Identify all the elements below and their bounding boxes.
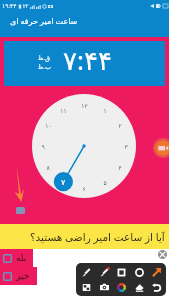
staticText: ۲۲ (23, 3, 29, 9)
button[interactable]: Arrow (148, 265, 164, 279)
staticText: ۸ (46, 164, 50, 171)
button[interactable]: Undo (148, 280, 164, 294)
staticText: ۲ (118, 122, 122, 129)
staticText: ۷ (61, 178, 66, 187)
staticText: ۱۹:۴۴ (2, 2, 17, 10)
staticText: ۳ (124, 143, 128, 150)
button[interactable]: Video call (153, 138, 169, 158)
button[interactable]: Colour (113, 280, 129, 294)
button[interactable]: Square (113, 265, 129, 279)
button[interactable]: Highlighter (96, 265, 112, 279)
button[interactable]: Eraser (131, 280, 147, 294)
staticText: ۱۱ (60, 107, 67, 114)
staticText: ۱ (103, 107, 107, 114)
staticText: ب.ظ (38, 63, 51, 71)
staticText: ۱۲ (81, 102, 88, 109)
staticText: آیا از ساعت امیر راضی هستید؟ (30, 230, 165, 244)
staticText: ۹ (41, 143, 45, 150)
button[interactable]: بله (0, 249, 33, 267)
button[interactable]: Pen (78, 265, 94, 279)
button[interactable]: Mosaic (78, 280, 94, 294)
staticText: ۱۰ (45, 122, 52, 129)
staticText: ساعت امیر حرفه ای (10, 15, 78, 26)
staticText: ۴ (118, 164, 122, 171)
staticText: بله (16, 253, 27, 263)
staticText: ق.ظ (38, 54, 50, 62)
button[interactable]: Circle (131, 265, 147, 279)
staticText: ۵ (103, 179, 107, 186)
staticText: ۷:۴۴ (63, 42, 112, 77)
button[interactable]: Camera (96, 280, 112, 294)
button[interactable]: Close (158, 250, 167, 259)
staticText: ۶ (82, 185, 86, 192)
staticText: خیر (16, 271, 30, 281)
button[interactable]: خیر (0, 267, 37, 285)
staticText: ۷ (61, 179, 65, 186)
button[interactable]: ۷:۴۴ (4, 41, 165, 86)
